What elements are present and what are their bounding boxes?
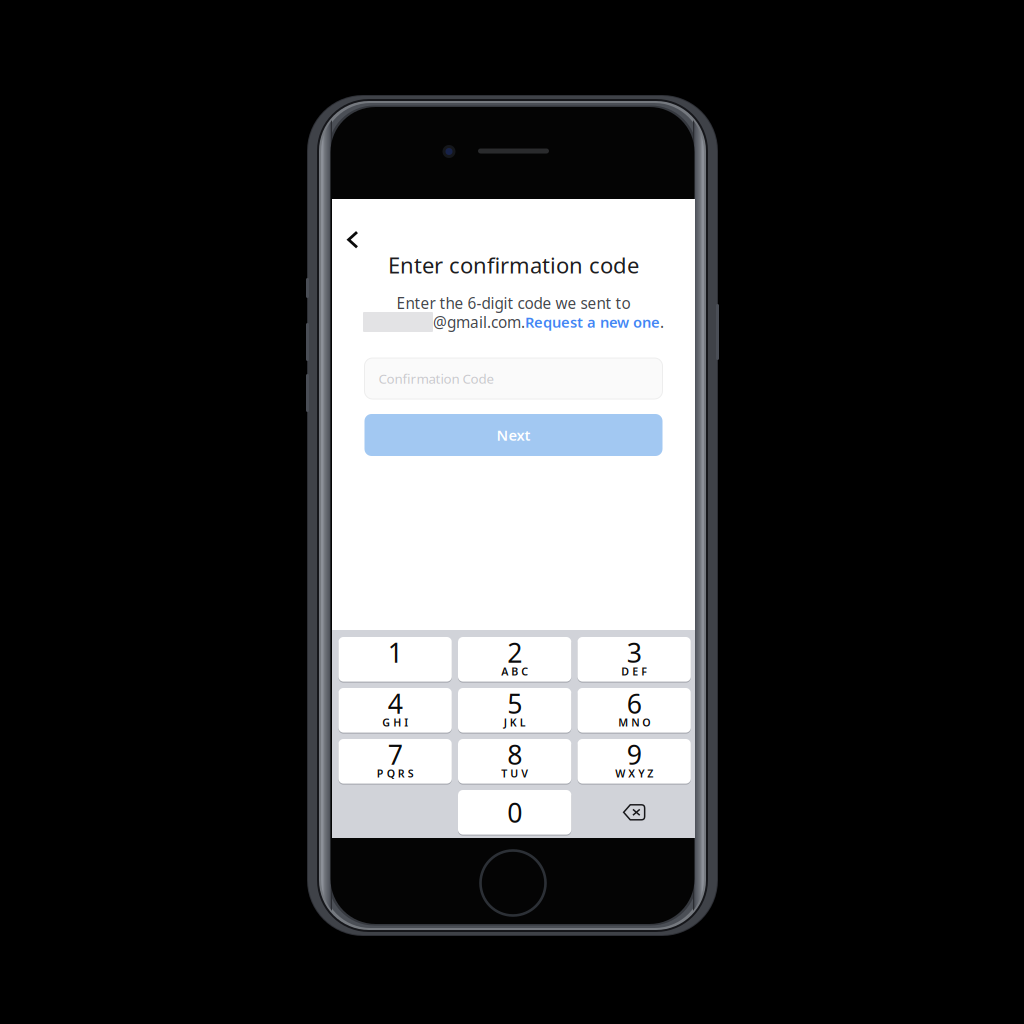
button[interactable]: 3 [577,637,691,682]
staticText: Enter confirmation code [388,250,639,280]
button[interactable]: 1 [338,637,452,682]
staticText: 4 [388,686,403,721]
button[interactable]: Next [364,414,662,456]
staticText: Confirmation Code [378,370,494,387]
staticText: 7 [388,737,403,772]
staticText: 3 [627,635,642,670]
staticText: 2 [507,635,522,670]
staticText: 8 [507,737,522,772]
button[interactable]: 0 [458,790,571,835]
button[interactable]: 2 [458,637,571,682]
staticText: . [660,312,664,332]
button[interactable]: Confirmation Code [364,358,662,399]
staticText: Enter the 6-digit code we sent to [396,293,630,313]
staticText: W X Y Z [615,766,653,780]
staticText: Next [496,425,530,445]
staticText: D E F [621,664,647,678]
button[interactable]: 9 [577,739,691,784]
staticText: 6 [627,686,642,721]
button[interactable]: 7 [338,739,452,784]
staticText: 1 [388,635,403,670]
button[interactable]: Request a new one [525,312,660,332]
staticText: A B C [501,664,528,678]
staticText: 5 [507,686,522,721]
staticText: M N O [618,715,650,729]
staticText: G H I [382,715,408,729]
staticText: P Q R S [377,766,414,780]
button[interactable]: 5 [458,688,571,733]
staticText: 0 [507,795,522,830]
button[interactable]: 8 [458,739,571,784]
staticText: @gmail.com. [433,312,525,332]
staticText: 9 [627,737,642,772]
staticText: Request a new one [525,312,660,332]
button[interactable]: Back [333,220,373,260]
button[interactable]: Delete [577,790,691,835]
button[interactable]: 6 [577,688,691,733]
staticText: J K L [504,715,526,729]
staticText: T U V [501,766,528,780]
button[interactable]: 4 [338,688,452,733]
